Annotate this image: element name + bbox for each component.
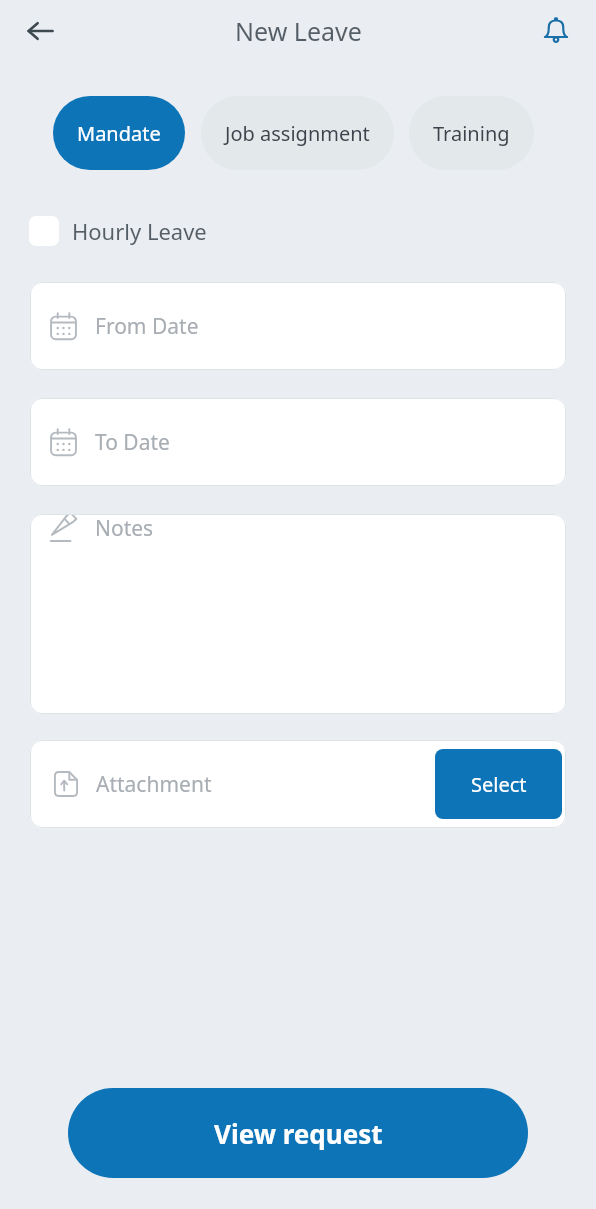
button[interactable]: Hourly Leave [29,209,207,253]
staticText: Attachment [96,770,212,799]
button[interactable]: To Date [30,398,566,486]
button[interactable]: Select [435,749,562,819]
button[interactable]: Back [14,5,66,57]
staticText: Training [433,120,510,147]
staticText: Job assignment [225,120,370,147]
button[interactable]: Attach file [49,767,83,801]
staticText: View request [214,1116,383,1151]
staticText: From Date [95,312,199,341]
button[interactable]: Mandate [53,96,185,170]
button[interactable]: Notes [30,514,566,714]
staticText: New Leave [235,14,362,48]
staticText: Notes [95,514,154,543]
button[interactable]: Notifications [530,5,582,57]
staticText: Hourly Leave [72,216,207,246]
staticText: Mandate [77,120,161,147]
staticText: Select [471,771,527,798]
button[interactable]: Training [409,96,534,170]
button[interactable]: View request [68,1088,528,1178]
button[interactable]: Job assignment [201,96,394,170]
button[interactable]: From Date [30,282,566,370]
staticText: To Date [95,428,170,457]
